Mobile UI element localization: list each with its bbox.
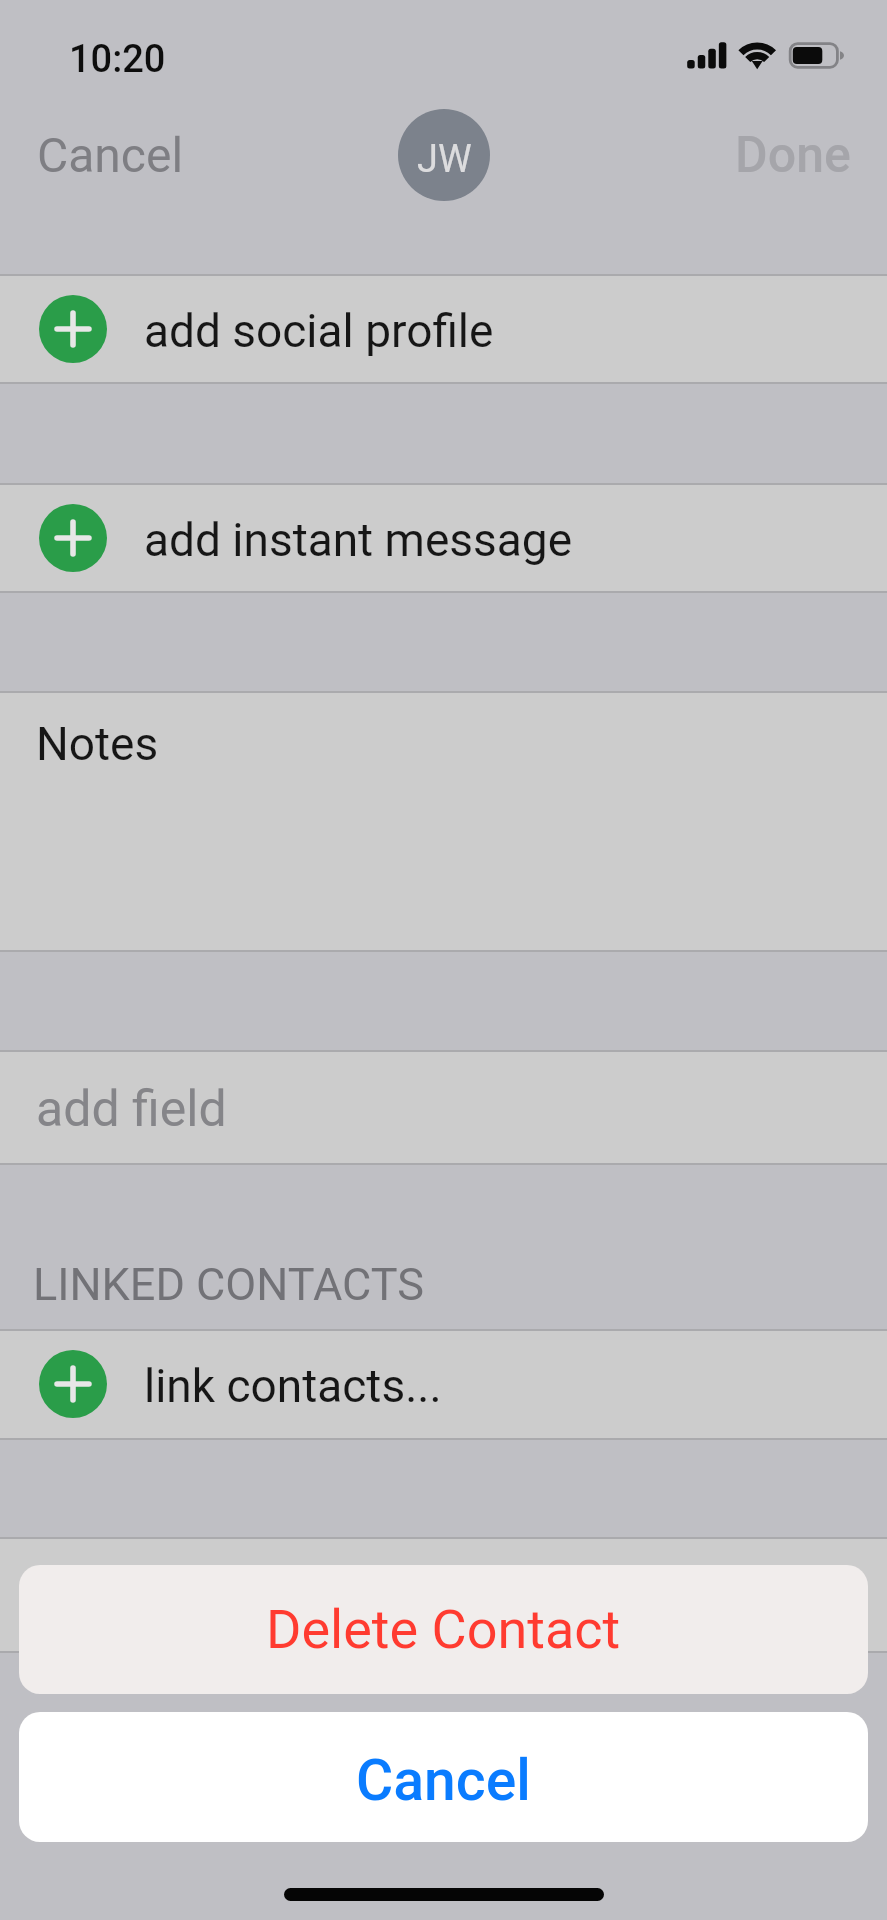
button[interactable]: add field — [0, 1052, 887, 1163]
staticText: Delete Contact — [266, 1598, 621, 1661]
button[interactable]: Delete Contact — [19, 1565, 868, 1694]
staticText: add field — [36, 1080, 227, 1139]
staticText: link contacts... — [144, 1359, 442, 1413]
staticText: JW — [417, 137, 472, 182]
button[interactable]: Done — [735, 126, 851, 185]
button[interactable]: add instant message — [0, 485, 887, 591]
staticText: LINKED CONTACTS — [33, 1258, 424, 1311]
staticText: add social profile — [144, 304, 494, 358]
button[interactable]: Contact photo — [398, 109, 490, 201]
button[interactable]: Cancel — [19, 1712, 868, 1842]
button[interactable]: link contacts... — [0, 1331, 887, 1438]
button[interactable]: Notes — [0, 693, 887, 950]
staticText: 10:20 — [69, 37, 166, 82]
staticText: add instant message — [144, 513, 573, 567]
other: Signal, Wi-Fi and battery status — [687, 41, 847, 71]
staticText: Notes — [36, 717, 159, 771]
button[interactable]: add social profile — [0, 276, 887, 382]
staticText: Cancel — [356, 1747, 531, 1814]
button[interactable]: Cancel — [37, 127, 184, 183]
